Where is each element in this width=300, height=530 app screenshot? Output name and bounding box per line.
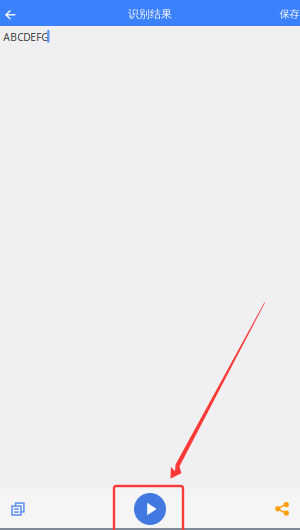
- button[interactable]: Share: [264, 490, 300, 528]
- staticText: 识别结果: [128, 7, 172, 21]
- button[interactable]: Back: [0, 2, 22, 28]
- staticText: 保存: [279, 7, 299, 20]
- button[interactable]: Play: [120, 490, 180, 528]
- staticText: ABCDEFG: [3, 30, 48, 44]
- button[interactable]: 保存: [277, 1, 300, 27]
- button[interactable]: Copy: [0, 490, 36, 528]
